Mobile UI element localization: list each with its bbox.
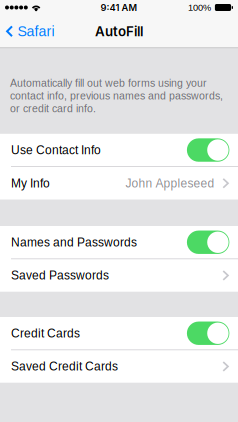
staticText: Safari <box>17 23 54 39</box>
staticText: Credit Cards <box>11 327 80 340</box>
button[interactable]: Saved Passwords <box>0 259 238 292</box>
staticText: Names and Passwords <box>11 236 137 249</box>
staticText: or credit card info. <box>10 103 96 115</box>
staticText: John Appleseed <box>125 177 214 190</box>
staticText: Saved Credit Cards <box>11 360 118 373</box>
staticText: Automatically fill out web forms using y… <box>10 77 207 89</box>
button[interactable]: Credit Cards <box>0 317 238 349</box>
staticText: AutoFill <box>95 23 143 39</box>
staticText: Use Contact Info <box>11 143 101 157</box>
staticText: My Info <box>11 177 50 190</box>
staticText: Saved Passwords <box>11 269 109 282</box>
staticText: contact info, previous names and passwor… <box>10 90 223 102</box>
button[interactable]: My Info <box>0 167 238 199</box>
button[interactable]: Saved Credit Cards <box>0 350 238 383</box>
button[interactable]: Use Contact Info <box>0 134 238 166</box>
button[interactable]: Safari <box>0 15 60 48</box>
button[interactable]: Names and Passwords <box>0 226 238 258</box>
staticText: 9:41 AM <box>100 2 137 13</box>
staticText: 100% <box>188 2 211 13</box>
